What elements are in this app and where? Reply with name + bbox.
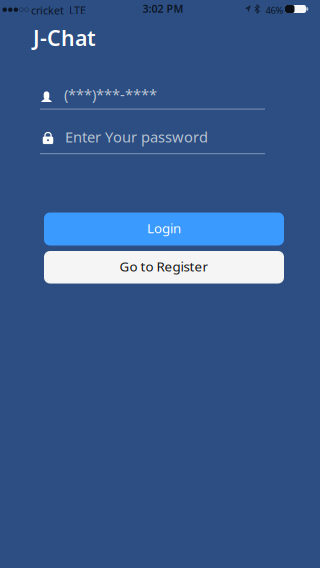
staticText: Go to Register [119,257,208,275]
staticText: (***)***-**** [64,84,157,104]
staticText: cricket [31,3,64,17]
staticText: 3:02 PM [142,1,183,16]
button[interactable]: Login [44,212,284,245]
button[interactable]: Phone number [40,85,265,110]
staticText: 46% [265,4,283,16]
staticText: LTE [69,3,86,17]
staticText: Enter Your password [65,127,208,146]
button[interactable]: Go to Register [44,251,284,283]
staticText: Login [147,219,181,237]
staticText: J-Chat [33,23,96,52]
button[interactable]: Password [40,126,265,155]
